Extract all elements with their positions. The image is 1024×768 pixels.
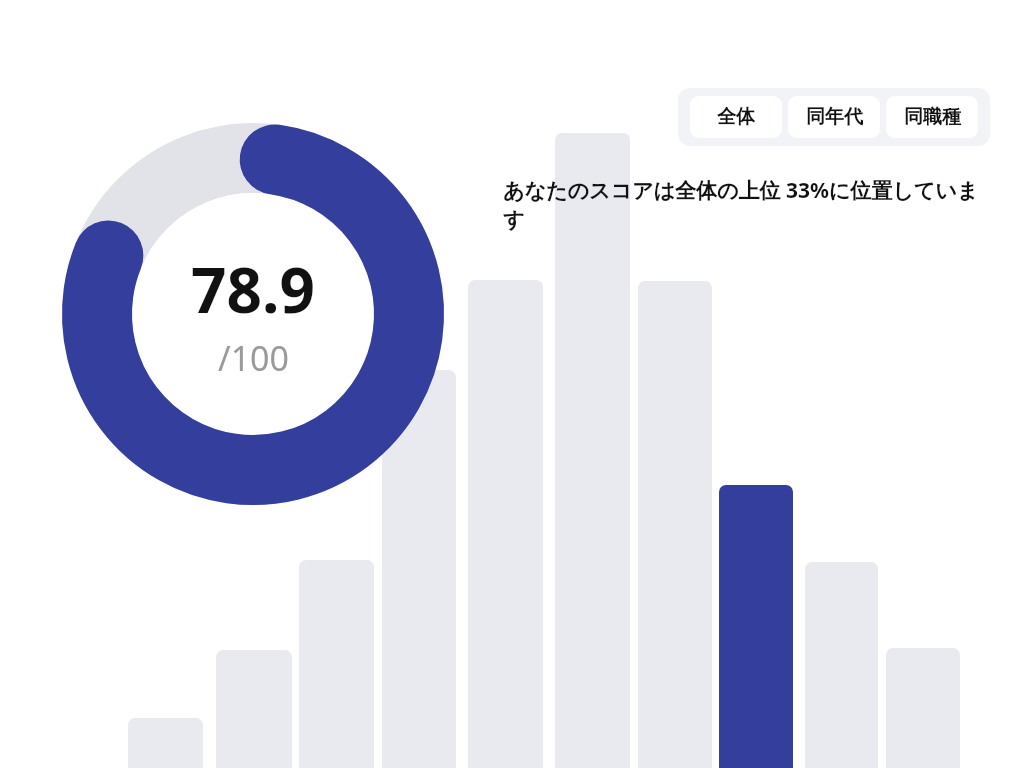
button[interactable]: 同職種 (886, 96, 978, 138)
button[interactable]: 同年代 (788, 96, 880, 138)
staticText: /100 (218, 335, 289, 381)
staticText: 78.9 (191, 247, 315, 331)
button[interactable]: 全体 (690, 96, 782, 138)
staticText: 同職種 (904, 105, 961, 129)
staticText: 同年代 (806, 105, 863, 129)
staticText: 全体 (717, 105, 755, 129)
staticText: あなたのスコアは全体の上位 33%に位置しています (503, 176, 995, 233)
